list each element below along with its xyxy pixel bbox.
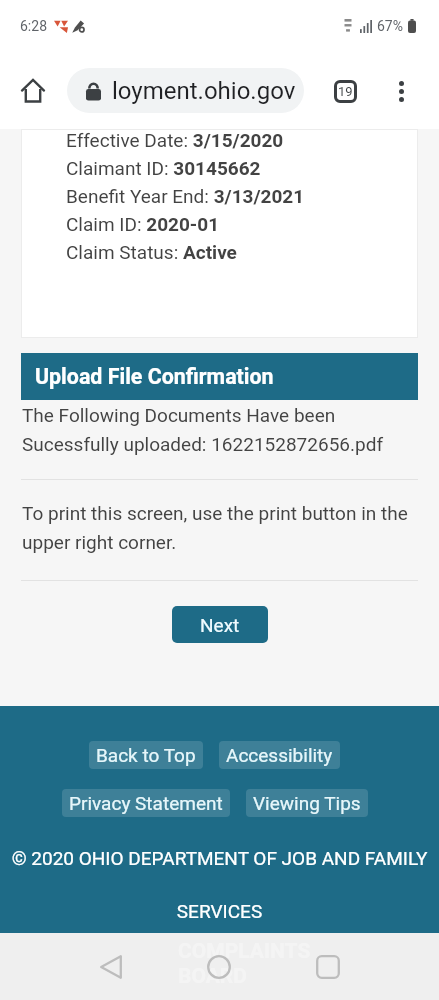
staticText: Viewing Tips (253, 792, 361, 814)
staticText: © 2020 OHIO DEPARTMENT OF JOB AND FAMILY (0, 847, 439, 869)
staticText: 67% (377, 18, 403, 34)
button[interactable]: Home (192, 940, 246, 994)
staticText: Effective Date: 3/15/2020 Claimant ID: 3… (66, 129, 305, 264)
button[interactable]: Back (84, 940, 138, 994)
staticText: BOARD (178, 964, 247, 989)
staticText: To print this screen, use the print butt… (22, 502, 408, 553)
button[interactable]: Accessibility (219, 741, 340, 769)
staticText: 6:28 (20, 18, 47, 34)
staticText: loyment.ohio.gov (112, 77, 296, 105)
button[interactable]: loyment.ohio.gov (67, 68, 304, 113)
staticText: Privacy Statement (69, 792, 223, 814)
button[interactable]: Back to Top (89, 741, 203, 769)
button[interactable]: Next (172, 606, 268, 643)
staticText: Upload File Confirmation (35, 364, 274, 389)
staticText: Next (200, 614, 240, 636)
button[interactable]: Tabs (324, 70, 366, 112)
button[interactable]: Recent apps (301, 940, 355, 994)
button[interactable]: Viewing Tips (246, 789, 368, 817)
staticText: COMPLAINTS (178, 939, 311, 964)
staticText: The Following Documents Have been Sucess… (22, 404, 383, 455)
button[interactable]: Home (9, 67, 57, 115)
staticText: 19 (338, 84, 353, 99)
staticText: Accessibility (226, 744, 333, 766)
staticText: Back to Top (96, 744, 196, 766)
staticText: SERVICES (0, 900, 439, 922)
button[interactable]: More options (380, 70, 422, 112)
button[interactable]: Privacy Statement (62, 789, 230, 817)
